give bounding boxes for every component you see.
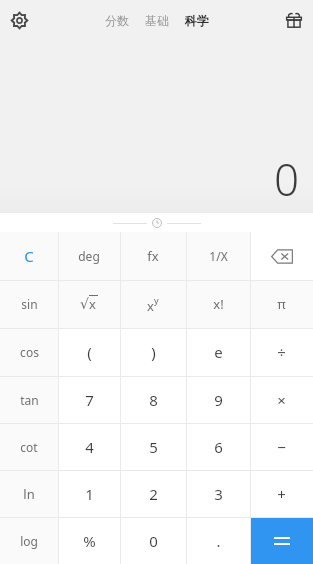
button[interactable]: e — [186, 328, 250, 376]
button[interactable]: − — [250, 423, 313, 470]
button[interactable]: 基础 — [142, 9, 172, 32]
button[interactable]: cos — [0, 328, 58, 376]
staticText: ln — [23, 485, 35, 503]
button[interactable]: ÷ — [250, 328, 313, 376]
staticText: 4 — [85, 437, 94, 457]
staticText: 2 — [149, 484, 158, 504]
staticText: C — [24, 246, 34, 266]
button[interactable]: 1 — [58, 470, 120, 517]
staticText: x — [89, 295, 96, 313]
button[interactable]: 6 — [186, 423, 250, 470]
button[interactable]: C — [0, 232, 58, 280]
staticText: x! — [213, 295, 224, 313]
staticText: 8 — [149, 390, 158, 410]
staticText: 0 — [274, 149, 300, 209]
staticText: ( — [87, 342, 92, 362]
staticText: 分数 — [105, 13, 129, 28]
button[interactable]: Settings — [3, 4, 35, 36]
staticText: 0 — [149, 531, 158, 551]
staticText: 1 — [85, 484, 94, 504]
staticText: cot — [20, 439, 38, 455]
button[interactable]: fx — [120, 232, 186, 280]
staticText: % — [83, 531, 96, 551]
staticText: + — [277, 484, 286, 504]
button[interactable]: 3 — [186, 470, 250, 517]
staticText: 基础 — [145, 13, 169, 28]
staticText: 科学 — [185, 13, 209, 28]
staticText: 9 — [214, 390, 223, 410]
button[interactable]: ( — [58, 328, 120, 376]
button[interactable]: π — [250, 280, 313, 328]
button[interactable]: % — [58, 517, 120, 564]
staticText: e — [214, 342, 223, 362]
button[interactable]: . — [186, 517, 250, 564]
button[interactable]: 分数 — [102, 9, 132, 32]
staticText: sin — [21, 296, 38, 312]
button[interactable]: sin — [0, 280, 58, 328]
staticText: 6 — [214, 437, 223, 457]
button[interactable]: 9 — [186, 376, 250, 423]
staticText: ) — [151, 342, 156, 362]
staticText: 7 — [85, 390, 94, 410]
staticText: log — [20, 533, 38, 549]
staticText: √ — [80, 296, 89, 312]
staticText: − — [277, 437, 286, 457]
staticText: 5 — [149, 437, 158, 457]
button[interactable]: 0 — [120, 517, 186, 564]
button[interactable]: tan — [0, 376, 58, 423]
staticText: y — [154, 294, 159, 306]
button[interactable]: cot — [0, 423, 58, 470]
staticText: cos — [20, 344, 39, 360]
button[interactable]: ) — [120, 328, 186, 376]
button[interactable]: √ — [58, 280, 120, 328]
button[interactable]: 1/X — [186, 232, 250, 280]
staticText: ÷ — [277, 342, 286, 362]
button[interactable]: 8 — [120, 376, 186, 423]
staticText: fx — [147, 247, 159, 265]
staticText: deg — [78, 248, 100, 264]
button[interactable]: Backspace — [250, 232, 313, 280]
button[interactable]: Gift — [279, 5, 309, 35]
button[interactable]: 科学 — [182, 9, 212, 32]
staticText: × — [277, 390, 286, 410]
button[interactable]: 5 — [120, 423, 186, 470]
button[interactable]: deg — [58, 232, 120, 280]
staticText: π — [277, 295, 286, 313]
button[interactable] — [250, 517, 313, 564]
button[interactable]: 7 — [58, 376, 120, 423]
staticText: 1/X — [209, 248, 228, 264]
staticText: . — [216, 531, 221, 551]
button[interactable]: × — [250, 376, 313, 423]
button[interactable]: ln — [0, 470, 58, 517]
button[interactable]: 4 — [58, 423, 120, 470]
staticText: tan — [20, 392, 39, 408]
button[interactable]: x — [120, 280, 186, 328]
staticText: x — [147, 297, 154, 315]
button[interactable]: log — [0, 517, 58, 564]
button[interactable]: + — [250, 470, 313, 517]
button[interactable]: 2 — [120, 470, 186, 517]
button[interactable]: x! — [186, 280, 250, 328]
staticText: 3 — [214, 484, 223, 504]
button[interactable]: History — [109, 216, 205, 230]
